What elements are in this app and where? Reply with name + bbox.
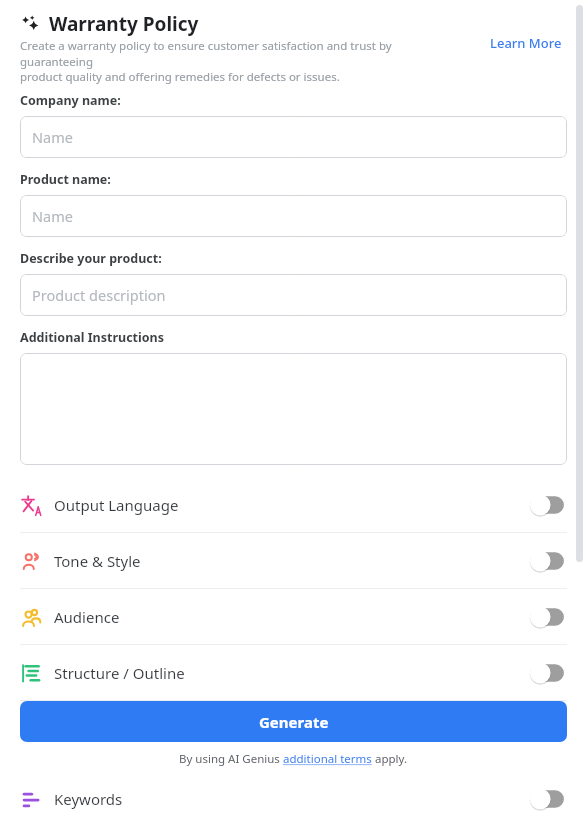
staticText: Additional Instructions (20, 329, 164, 346)
button[interactable]: Toggle (529, 549, 567, 573)
staticText: Company name: (20, 92, 121, 109)
button[interactable]: Learn More (486, 32, 566, 54)
button[interactable] (20, 353, 567, 465)
staticText: Create a warranty policy to ensure custo… (20, 38, 465, 84)
staticText: additional terms (283, 751, 372, 767)
staticText: Tone & Style (54, 551, 529, 571)
button[interactable]: Toggle (529, 787, 567, 811)
staticText: Name (32, 206, 73, 226)
staticText: Name (32, 127, 73, 147)
staticText: Learn More (490, 34, 562, 52)
staticText: Product name: (20, 171, 111, 188)
button[interactable]: Toggle (529, 661, 567, 685)
staticText: apply. (372, 751, 408, 767)
staticText: Describe your product: (20, 250, 162, 267)
button[interactable]: additional terms (283, 751, 372, 767)
staticText: Output Language (54, 495, 529, 515)
button[interactable]: Name (20, 116, 567, 158)
button[interactable]: Product description (20, 274, 567, 316)
staticText: Keywords (54, 789, 529, 809)
staticText: Product description (32, 285, 166, 305)
button[interactable]: Toggle (529, 605, 567, 629)
staticText: Audience (54, 607, 529, 627)
button[interactable]: Generate (20, 701, 567, 742)
staticText: Warranty Policy (49, 11, 199, 37)
button[interactable]: Tone & Style (0, 533, 587, 588)
staticText: By using AI Genius (179, 751, 283, 767)
button[interactable]: Structure / Outline (0, 645, 587, 700)
staticText: Generate (259, 712, 329, 732)
button[interactable]: Keywords (0, 775, 587, 823)
button[interactable]: Audience (0, 589, 587, 644)
button[interactable]: Name (20, 195, 567, 237)
staticText: Structure / Outline (54, 663, 529, 683)
button[interactable]: Output Language (0, 477, 587, 532)
button[interactable]: Toggle (529, 493, 567, 517)
